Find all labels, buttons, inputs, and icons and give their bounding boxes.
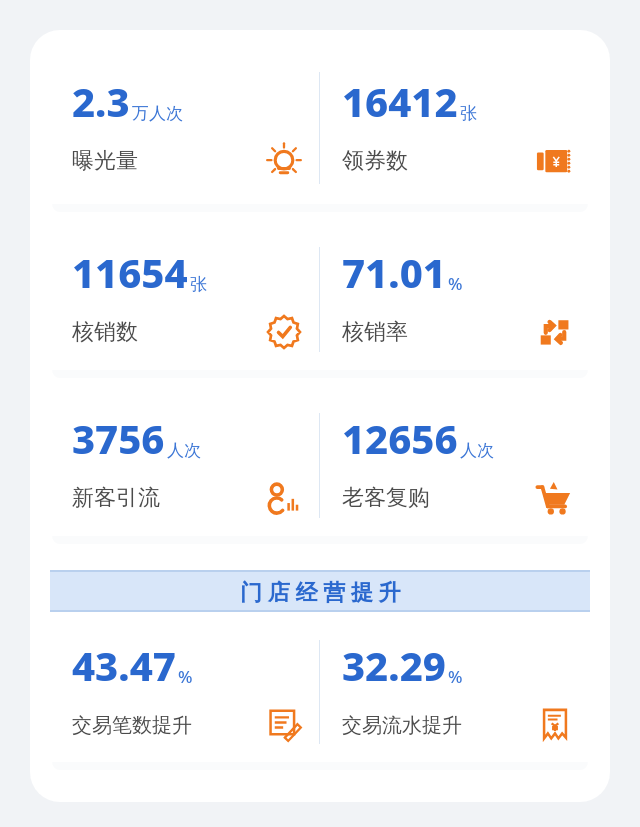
other: 领券数 — [534, 140, 576, 182]
staticText: 核销率 — [342, 318, 408, 346]
staticText: 新客引流 — [72, 484, 160, 512]
staticText: 71.01 — [342, 245, 446, 299]
button[interactable]: 2.3 — [50, 52, 319, 204]
staticText: 领券数 — [342, 147, 408, 175]
staticText: 张 — [460, 103, 477, 124]
staticText: 2.3 — [72, 74, 130, 128]
other: 交易流水提升 — [534, 704, 576, 746]
staticText: 曝光量 — [72, 147, 138, 175]
button[interactable]: 16412 — [320, 52, 590, 204]
button[interactable]: 12656 — [320, 394, 590, 536]
button[interactable]: 门 店 经 营 提 升 — [50, 570, 590, 612]
staticText: 交易笔数提升 — [72, 713, 192, 738]
staticText: 张 — [190, 274, 207, 295]
staticText: 3756 — [72, 411, 165, 465]
button[interactable]: 32.29 — [320, 622, 590, 762]
staticText: 16412 — [342, 74, 458, 128]
other: 新客引流 — [263, 477, 305, 519]
staticText: 11654 — [72, 245, 188, 299]
staticText: 人次 — [460, 440, 494, 461]
button[interactable]: 71.01 — [320, 228, 590, 370]
staticText: 门 店 经 营 提 升 — [240, 576, 401, 606]
other: 核销率 — [534, 311, 576, 353]
other: 曝光量 — [263, 140, 305, 182]
staticText: 人次 — [167, 440, 201, 461]
staticText: % — [448, 272, 463, 295]
staticText: 43.47 — [72, 638, 176, 692]
button[interactable]: 43.47 — [50, 622, 319, 762]
button[interactable]: 11654 — [50, 228, 319, 370]
staticText: 12656 — [342, 411, 458, 465]
staticText: 万人次 — [132, 103, 183, 124]
staticText: 老客复购 — [342, 484, 430, 512]
staticText: % — [448, 665, 463, 688]
staticText: 交易流水提升 — [342, 713, 462, 738]
staticText: 核销数 — [72, 318, 138, 346]
other: 老客复购 — [534, 477, 576, 519]
staticText: 32.29 — [342, 638, 446, 692]
staticText: % — [178, 665, 193, 688]
other: 核销数 — [263, 311, 305, 353]
button[interactable]: 3756 — [50, 394, 319, 536]
other: 交易笔数提升 — [263, 704, 305, 746]
